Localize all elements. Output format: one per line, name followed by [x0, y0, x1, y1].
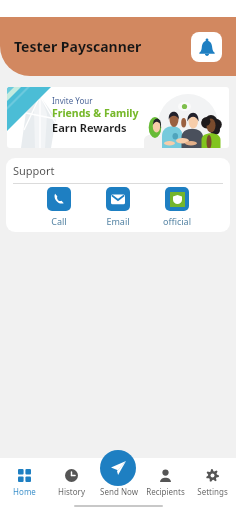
staticText: Invite Your	[52, 95, 93, 106]
button[interactable]: official	[160, 187, 194, 227]
button[interactable]: History	[48, 458, 95, 512]
staticText: History	[58, 486, 85, 497]
button[interactable]: Recipients	[142, 458, 189, 512]
staticText: Recipients	[146, 486, 185, 497]
staticText: Tester Payscanner	[14, 37, 142, 56]
staticText: Settings	[197, 486, 228, 497]
staticText: Send Now	[100, 486, 138, 497]
staticText: official	[163, 215, 191, 227]
button[interactable]: Email	[101, 187, 135, 227]
staticText: Call	[51, 215, 67, 227]
button[interactable]: Send Now	[100, 450, 136, 486]
button[interactable]: Settings	[189, 458, 236, 512]
button[interactable]: Call	[42, 187, 76, 227]
staticText: Support	[13, 163, 55, 178]
button[interactable]: Notifications	[191, 32, 222, 62]
staticText: Home	[13, 486, 36, 497]
button[interactable]: Invite Your	[7, 87, 229, 148]
button[interactable]: Send Now	[95, 458, 142, 512]
staticText: Friends & Family	[52, 106, 139, 120]
button[interactable]: Home	[0, 458, 48, 512]
staticText: Email	[106, 215, 130, 227]
staticText: Earn Rewards	[52, 120, 127, 135]
